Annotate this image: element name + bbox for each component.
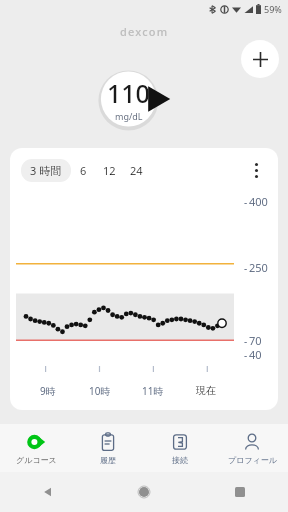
button[interactable]: More options — [243, 157, 269, 183]
staticText: 250 — [249, 260, 268, 275]
staticText: dexcom — [120, 24, 169, 39]
button[interactable]: 12 — [96, 159, 123, 182]
staticText: グルコース — [16, 455, 57, 465]
staticText: プロフィール — [228, 455, 277, 465]
staticText: 12 — [103, 163, 116, 178]
button[interactable]: 24 — [123, 159, 150, 182]
staticText: 現在 — [196, 384, 216, 397]
staticText: 履歴 — [100, 455, 116, 465]
button[interactable]: 6 — [71, 159, 96, 182]
staticText: 10時 — [89, 384, 111, 398]
staticText: mg/dL — [115, 110, 143, 122]
staticText: - — [244, 348, 248, 362]
staticText: 24 — [130, 163, 143, 178]
staticText: 59% — [264, 3, 282, 15]
button[interactable]: Back — [0, 472, 96, 512]
button[interactable]: Home — [96, 472, 192, 512]
staticText: 70 — [249, 333, 262, 348]
button[interactable]: 接続 — [144, 424, 216, 472]
staticText: 6 — [80, 163, 87, 178]
button[interactable]: 3 時間 — [21, 159, 71, 182]
staticText: - — [244, 195, 248, 209]
button[interactable]: プロフィール — [216, 424, 288, 472]
button[interactable]: Recents — [192, 472, 288, 512]
staticText: 110 — [107, 76, 150, 110]
staticText: 400 — [249, 194, 268, 209]
staticText: - — [244, 334, 248, 348]
staticText: 9時 — [40, 384, 56, 398]
staticText: 40 — [249, 347, 262, 362]
button[interactable]: グルコース — [0, 424, 72, 472]
staticText: 接続 — [172, 455, 188, 465]
staticText: 11時 — [142, 384, 164, 398]
button[interactable]: 110 — [98, 68, 178, 130]
staticText: - — [244, 261, 248, 275]
button[interactable]: Add event — [241, 40, 279, 78]
button[interactable]: 履歴 — [72, 424, 144, 472]
staticText: 3 時間 — [30, 163, 62, 178]
